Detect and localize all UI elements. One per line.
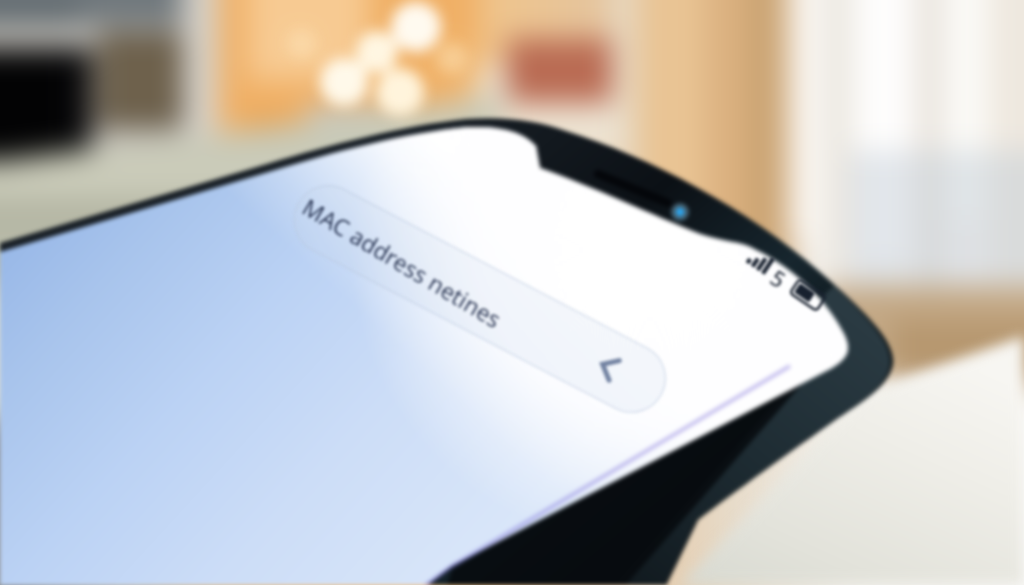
- button[interactable]: Search field showing MAC address netines: [0, 0, 1024, 585]
